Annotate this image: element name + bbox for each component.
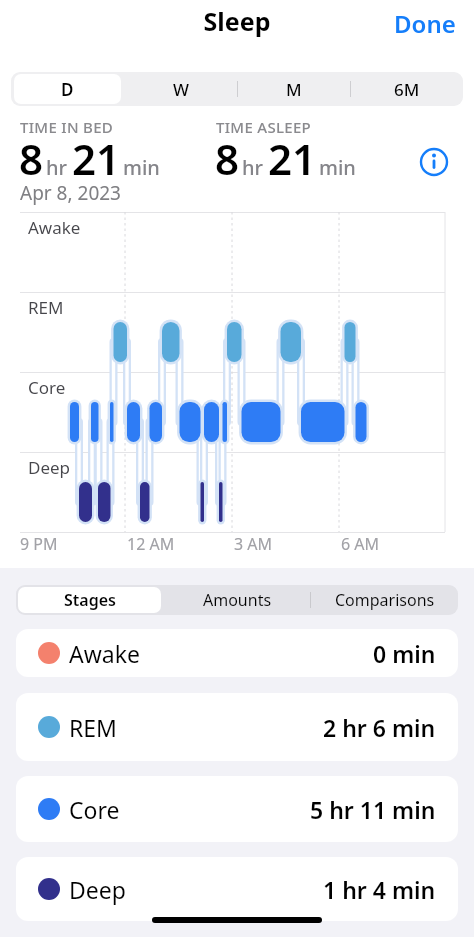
- staticText: Apr 8, 2023: [20, 180, 121, 206]
- staticText: Core: [28, 376, 66, 399]
- staticText: Core: [69, 794, 120, 825]
- staticText: Comparisons: [335, 589, 435, 611]
- staticText: REM: [28, 296, 64, 319]
- staticText: Stages: [64, 589, 116, 611]
- staticText: Amounts: [203, 589, 272, 611]
- staticText: Sleep: [0, 4, 474, 38]
- staticText: 2 hr 6 min: [323, 712, 436, 743]
- staticText: Deep: [28, 456, 71, 479]
- staticText: 12 AM: [127, 533, 175, 555]
- button[interactable]: Awake: [16, 629, 458, 677]
- staticText: 0 min: [373, 638, 436, 669]
- button[interactable]: Comparisons: [311, 585, 458, 615]
- staticText: 3 AM: [234, 533, 273, 555]
- button[interactable]: REM: [16, 693, 458, 761]
- staticText: Awake: [28, 216, 81, 239]
- staticText: M: [286, 78, 302, 101]
- button[interactable]: D: [11, 72, 124, 106]
- staticText: min: [319, 154, 356, 181]
- staticText: Awake: [69, 638, 140, 669]
- button[interactable]: Stages: [16, 585, 164, 615]
- staticText: 9 PM: [20, 533, 58, 555]
- staticText: TIME IN BED: [20, 117, 114, 137]
- button[interactable]: [418, 146, 450, 178]
- staticText: 6M: [394, 78, 420, 101]
- staticText: 21: [72, 130, 121, 187]
- button[interactable]: 6M: [350, 72, 463, 106]
- button[interactable]: Amounts: [164, 585, 311, 615]
- staticText: hr: [242, 154, 263, 181]
- staticText: 5 hr 11 min: [310, 794, 436, 825]
- staticText: 6 AM: [341, 533, 380, 555]
- staticText: 21: [268, 130, 317, 187]
- staticText: Deep: [69, 874, 126, 905]
- button[interactable]: Core: [16, 776, 458, 842]
- staticText: min: [123, 154, 160, 181]
- button[interactable]: W: [124, 72, 237, 106]
- button[interactable]: M: [237, 72, 350, 106]
- staticText: hr: [46, 154, 67, 181]
- staticText: D: [61, 78, 74, 101]
- staticText: 1 hr 4 min: [323, 874, 436, 905]
- staticText: REM: [69, 712, 117, 743]
- staticText: 8: [19, 130, 44, 187]
- staticText: TIME ASLEEP: [216, 117, 312, 137]
- staticText: W: [173, 78, 189, 101]
- button[interactable]: Done: [388, 1, 462, 46]
- staticText: 8: [215, 130, 240, 187]
- button[interactable]: Deep: [16, 857, 458, 921]
- staticText: Done: [394, 7, 456, 40]
